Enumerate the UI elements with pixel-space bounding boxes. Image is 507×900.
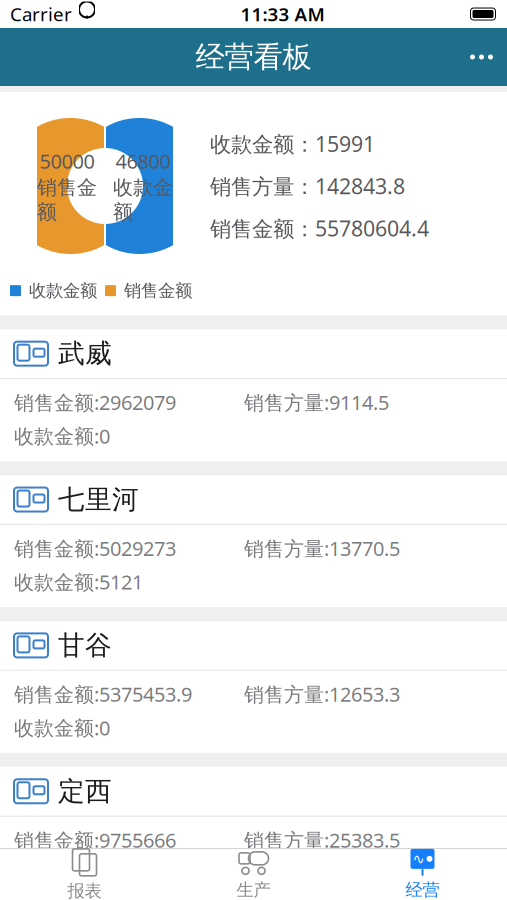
staticText: 销售方量:12653.3 <box>244 681 400 707</box>
staticText: 46800 <box>115 148 170 174</box>
button[interactable]: 甘谷 <box>0 621 507 753</box>
staticText: 经营 <box>405 879 439 900</box>
staticText: 经营看板 <box>195 39 311 75</box>
staticText: 收款金额：15991 <box>210 129 375 158</box>
staticText: 销售方量:9114.5 <box>244 389 389 416</box>
staticText: 销售金额 <box>37 175 97 224</box>
staticText: 武威 <box>58 337 112 370</box>
staticText: 销售金额 <box>124 280 192 301</box>
staticText: 11:33 AM <box>240 2 324 26</box>
button[interactable]: 武威 <box>0 329 507 461</box>
staticText: ∿ <box>412 850 424 867</box>
staticText: 收款金额:0 <box>14 714 110 741</box>
staticText: 销售方量:13770.5 <box>244 535 400 561</box>
staticText: 甘谷 <box>58 629 112 662</box>
staticText: 收款金额:0 <box>14 423 110 449</box>
staticText: 七里河 <box>58 483 139 516</box>
staticText: 销售方量:25383.5 <box>244 827 400 853</box>
staticText: 定西 <box>58 775 112 808</box>
staticText: 销售金额:9755666 <box>14 827 176 853</box>
button[interactable]: 定西 <box>0 767 507 899</box>
staticText: 收款金额 <box>113 175 173 224</box>
staticText: 销售金额:5029273 <box>14 535 176 561</box>
staticText: 销售方量：142843.8 <box>210 172 405 200</box>
button[interactable]: 生产 <box>169 849 338 900</box>
staticText: 生产 <box>236 879 270 900</box>
staticText: 收款金额:0 <box>14 860 110 887</box>
button[interactable]: More options <box>456 28 507 86</box>
staticText: 收款金额 <box>29 280 97 301</box>
staticText: 报表 <box>67 880 101 900</box>
button[interactable]: 报表 <box>0 849 169 900</box>
staticText: Carrier <box>10 2 72 26</box>
staticText: 销售金额:5375453.9 <box>14 681 192 707</box>
staticText: 销售金额:2962079 <box>14 389 176 416</box>
button[interactable]: ∿ <box>338 849 507 900</box>
staticText: 销售金额：55780604.4 <box>210 214 429 242</box>
staticText: 50000 <box>39 148 94 174</box>
staticText: 收款金额:5121 <box>14 568 143 595</box>
button[interactable]: 七里河 <box>0 475 507 607</box>
